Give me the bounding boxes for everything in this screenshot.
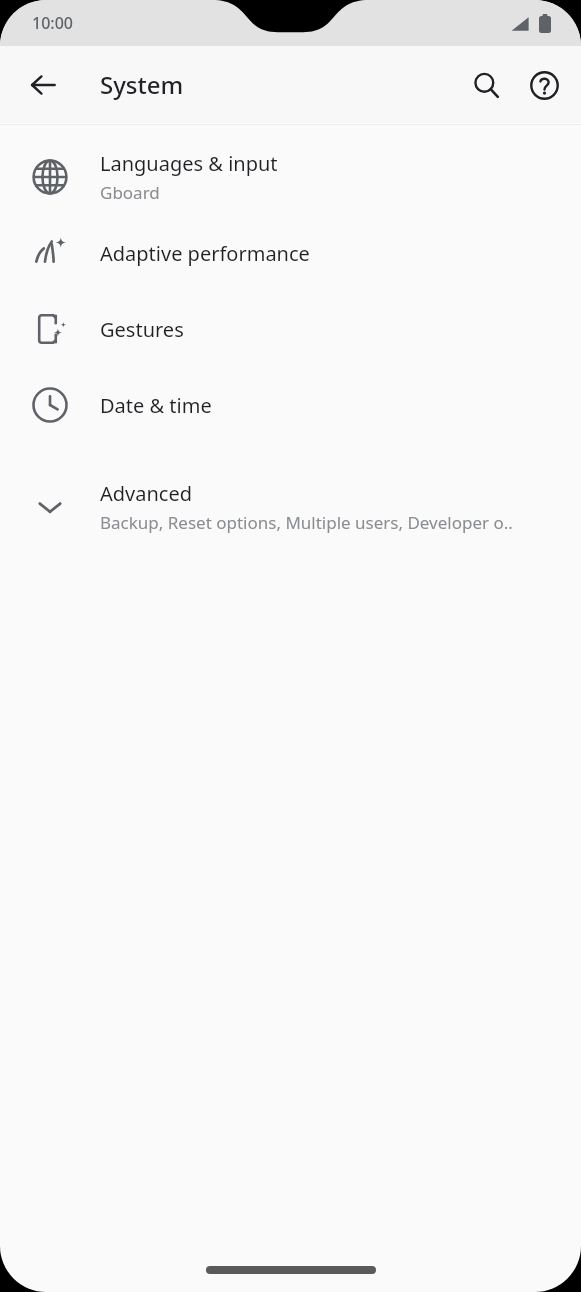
staticText: Backup, Reset options, Multiple users, D… — [100, 511, 513, 534]
button[interactable]: Help — [515, 56, 573, 114]
button[interactable]: Gestures — [0, 291, 581, 367]
staticText: Gboard — [100, 181, 160, 204]
button[interactable]: Adaptive performance — [0, 215, 581, 291]
staticText: 10:00 — [32, 12, 73, 34]
staticText: Date & time — [100, 392, 212, 419]
button[interactable]: Search — [457, 56, 515, 114]
staticText: Languages & input — [100, 150, 278, 177]
staticText: Adaptive performance — [100, 240, 310, 267]
staticText: System — [100, 68, 184, 101]
button[interactable]: Back — [14, 56, 72, 114]
staticText: Advanced — [100, 480, 192, 507]
button[interactable]: Date & time — [0, 367, 581, 443]
button[interactable]: Languages & input — [0, 139, 581, 215]
button[interactable]: Advanced — [0, 469, 581, 545]
staticText: Gestures — [100, 316, 184, 343]
